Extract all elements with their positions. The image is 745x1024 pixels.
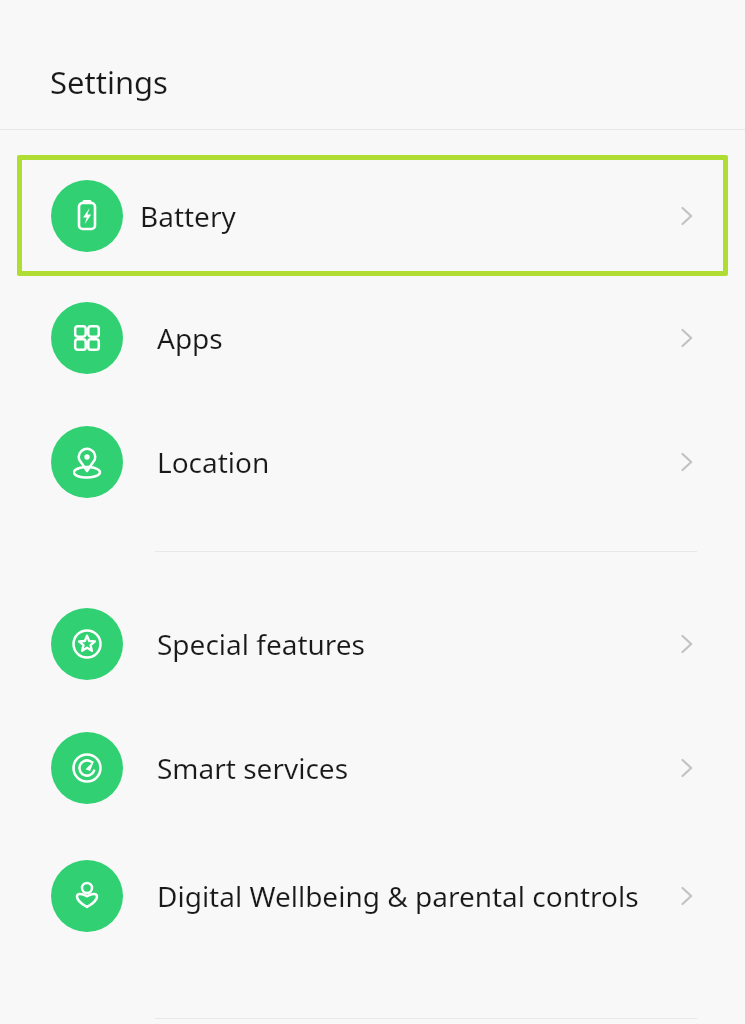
button[interactable]: Special features (0, 582, 745, 706)
button[interactable]: Digital Wellbeing & parental controls (0, 830, 745, 961)
staticText: Battery (140, 197, 649, 235)
staticText: Digital Wellbeing & parental controls (157, 877, 649, 915)
staticText: Smart services (157, 749, 649, 787)
button[interactable]: Location (0, 400, 745, 524)
staticText: Apps (157, 319, 649, 357)
staticText: Special features (157, 625, 649, 663)
staticText: Location (157, 443, 649, 481)
staticText: Settings (50, 61, 168, 103)
button[interactable]: Battery (17, 155, 728, 276)
button[interactable]: Smart services (0, 706, 745, 830)
button[interactable]: Apps (0, 276, 745, 400)
